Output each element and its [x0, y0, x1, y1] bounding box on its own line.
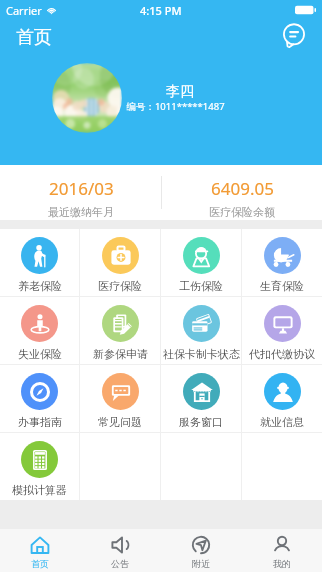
- button[interactable]: 就业信息: [242, 365, 322, 432]
- button[interactable]: 生育保险: [242, 229, 322, 296]
- button[interactable]: 常见问题: [80, 365, 160, 432]
- button[interactable]: 2016/03: [0, 165, 161, 220]
- staticText: 新参保申请: [93, 347, 148, 361]
- staticText: 工伤保险: [179, 279, 223, 293]
- staticText: 公告: [111, 558, 129, 569]
- button[interactable]: 医疗保险: [80, 229, 160, 296]
- staticText: 4:15 PM: [140, 3, 182, 18]
- button[interactable]: 我的: [241, 529, 322, 572]
- staticText: 服务窗口: [179, 415, 223, 429]
- staticText: 首页: [31, 558, 49, 569]
- button[interactable]: 首页: [0, 529, 80, 572]
- staticText: 生育保险: [260, 279, 304, 293]
- staticText: Carrier: [6, 3, 42, 18]
- staticText: 社保卡制卡状态: [163, 347, 240, 361]
- staticText: 养老保险: [18, 279, 62, 293]
- button[interactable]: 工伤保险: [161, 229, 241, 296]
- staticText: 编号：1011*****1487: [126, 100, 225, 113]
- button[interactable]: Messages: [281, 23, 307, 49]
- button[interactable]: 新参保申请: [80, 297, 160, 364]
- button[interactable]: 代扣代缴协议: [242, 297, 322, 364]
- staticText: 首页: [16, 26, 52, 49]
- staticText: 常见问题: [98, 415, 142, 429]
- staticText: 就业信息: [260, 415, 304, 429]
- button[interactable]: 附近: [160, 529, 241, 572]
- staticText: 6409.05: [211, 177, 274, 200]
- staticText: 医疗保险: [98, 279, 142, 293]
- staticText: 最近缴纳年月: [48, 205, 114, 219]
- button[interactable]: 社保卡制卡状态: [161, 297, 241, 364]
- staticText: 李四: [166, 83, 194, 101]
- staticText: 办事指南: [18, 415, 62, 429]
- staticText: 模拟计算器: [12, 483, 67, 497]
- staticText: 附近: [192, 558, 210, 569]
- button[interactable]: 公告: [80, 529, 160, 572]
- button[interactable]: 服务窗口: [161, 365, 241, 432]
- staticText: 2016/03: [49, 177, 114, 200]
- button[interactable]: 办事指南: [0, 365, 79, 432]
- button[interactable]: 模拟计算器: [0, 433, 79, 500]
- button[interactable]: 失业保险: [0, 297, 79, 364]
- button[interactable]: 养老保险: [0, 229, 79, 296]
- staticText: 我的: [273, 558, 291, 569]
- staticText: 失业保险: [18, 347, 62, 361]
- staticText: 代扣代缴协议: [249, 347, 315, 361]
- button[interactable]: 6409.05: [161, 165, 322, 220]
- staticText: 医疗保险余额: [209, 205, 275, 219]
